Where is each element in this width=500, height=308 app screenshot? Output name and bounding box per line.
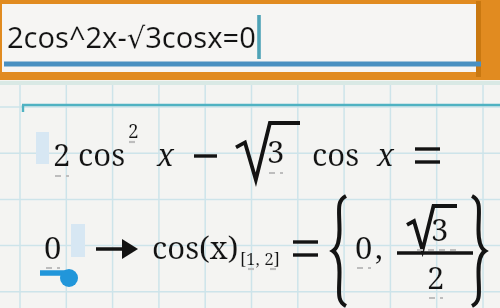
- button[interactable]: Solve: [478, 0, 500, 80]
- button[interactable]: Solution steps: [0, 84, 500, 308]
- button[interactable]: Equation input: [0, 4, 476, 66]
